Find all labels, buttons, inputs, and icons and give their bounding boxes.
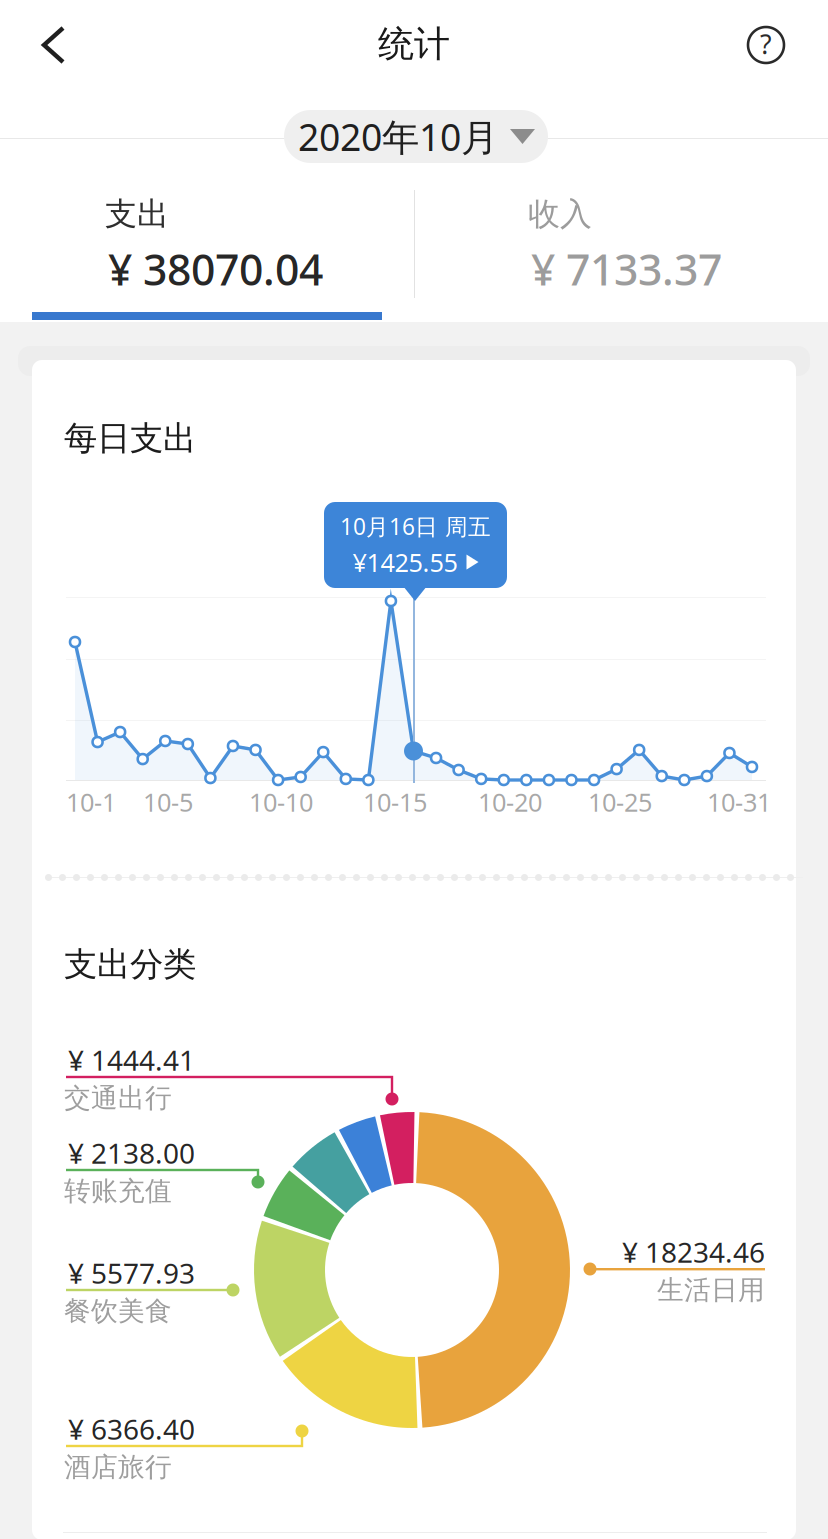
staticText: ¥ 38070.04 <box>108 241 323 297</box>
staticText: 10-15 <box>363 785 427 819</box>
button[interactable]: Back <box>10 0 94 88</box>
staticText: 酒店旅行 <box>64 1451 172 1483</box>
staticText: 2020年10月 <box>298 112 498 161</box>
staticText: 收入 <box>528 194 592 234</box>
button[interactable]: 2020年10月 <box>284 110 548 163</box>
staticText: 每日支出 <box>64 418 196 459</box>
button[interactable]: Help <box>724 0 808 88</box>
staticText: 交通出行 <box>64 1082 172 1114</box>
staticText: ¥1425.55 <box>352 545 457 579</box>
staticText: 10-1 <box>66 785 116 819</box>
staticText: 转账充值 <box>64 1175 172 1207</box>
staticText: 生活日用 <box>657 1274 765 1306</box>
staticText: ¥ 2138.00 <box>68 1134 195 1172</box>
staticText: 10-10 <box>249 785 313 819</box>
staticText: 10-31 <box>707 785 771 819</box>
staticText: 支出 <box>105 194 169 234</box>
staticText: 10-20 <box>478 785 542 819</box>
staticText: ¥ 6366.40 <box>68 1410 195 1448</box>
staticText: 支出分类 <box>64 944 196 985</box>
staticText: ¥ 5577.93 <box>68 1254 195 1292</box>
staticText: 统计 <box>378 22 450 66</box>
staticText: ? <box>760 26 772 62</box>
staticText: 10月16日 周五 <box>340 511 491 541</box>
staticText: 10-25 <box>588 785 652 819</box>
staticText: ¥ 18234.46 <box>622 1233 765 1271</box>
staticText: 餐饮美食 <box>64 1295 172 1327</box>
staticText: ¥ 1444.41 <box>68 1041 195 1079</box>
staticText: ¥ 7133.37 <box>531 241 722 297</box>
staticText: 10-5 <box>143 785 193 819</box>
